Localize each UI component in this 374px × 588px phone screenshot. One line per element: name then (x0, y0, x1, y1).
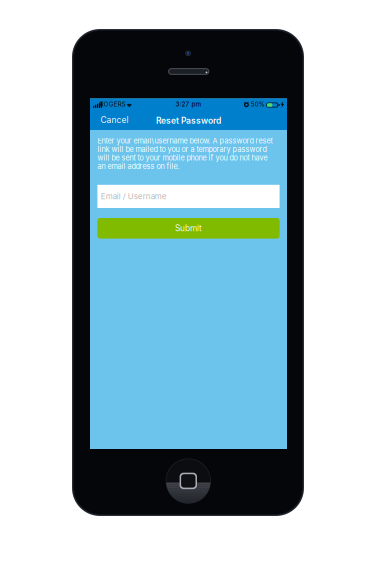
staticText: Cancel (101, 115, 129, 125)
staticText: Email / Username (101, 192, 167, 201)
staticText: ROGERS (100, 100, 126, 108)
staticText: 50% (251, 100, 265, 108)
staticText: Enter your email\username below. A passw… (97, 136, 272, 145)
staticText: Submit (175, 223, 202, 233)
staticText: 3:27 pm (175, 100, 201, 108)
staticText: will be sent to your mobile phone if you… (97, 153, 267, 162)
staticText: Reset Password (156, 116, 221, 126)
staticText: an email address on file. (97, 162, 179, 171)
button[interactable]: Cancel (97, 110, 133, 130)
staticText: link will be mailed to you or a temporar… (97, 145, 266, 154)
button[interactable]: Submit (97, 218, 280, 239)
button[interactable]: Email / Username (97, 185, 280, 208)
